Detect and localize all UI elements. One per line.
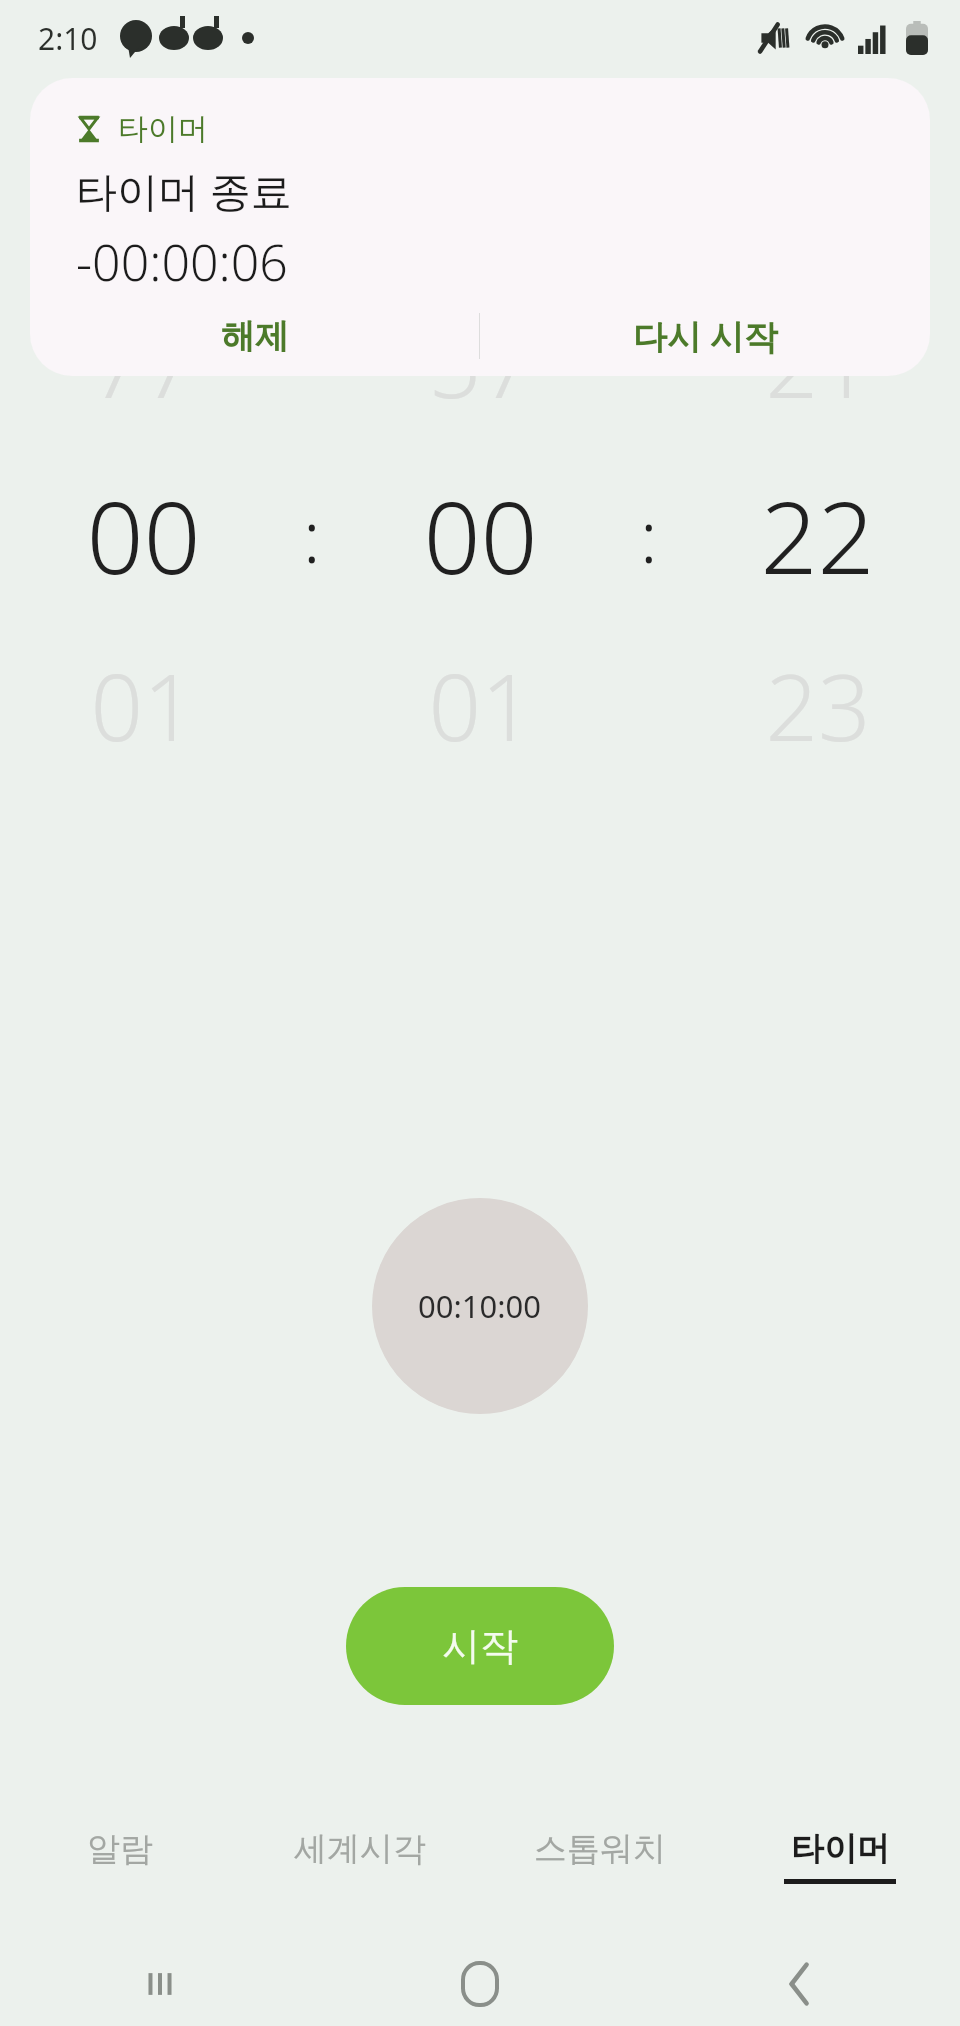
button[interactable]: Back [640, 1942, 960, 2026]
staticText: 세계시각 [294, 1828, 426, 1870]
button[interactable]: 타이머 [30, 78, 930, 376]
staticText: : [640, 486, 658, 584]
staticText: 21 [765, 300, 871, 425]
staticText: 시작 [442, 1622, 518, 1670]
staticText: 타이머 [118, 110, 208, 148]
staticText: : [303, 486, 321, 584]
staticText: 타이머 종료 [76, 162, 292, 218]
staticText: 22 [760, 467, 875, 603]
button[interactable]: 알람 [0, 1820, 240, 1930]
button[interactable]: 해제 [30, 296, 479, 376]
button[interactable]: 세계시각 [240, 1820, 480, 1930]
staticText: -00:00:06 [76, 228, 288, 296]
staticText: 해제 [221, 315, 289, 358]
staticText: 다시 시작 [633, 313, 778, 359]
button[interactable]: Home [320, 1942, 640, 2026]
staticText: 00 [423, 467, 538, 603]
staticText: 00 [86, 467, 201, 603]
staticText: 01 [90, 643, 196, 768]
staticText: 알람 [87, 1828, 153, 1870]
button[interactable]: 00:10:00 [372, 1198, 588, 1414]
staticText: 23 [765, 643, 871, 768]
staticText: 00:10:00 [418, 1285, 542, 1327]
button[interactable]: 시작 [346, 1587, 614, 1705]
staticText: 2:10 [38, 18, 98, 59]
staticText: 타이머 [791, 1828, 890, 1870]
staticText: 01 [428, 643, 534, 768]
staticText: 57 [428, 300, 534, 425]
button[interactable]: 타이머 [720, 1820, 960, 1930]
staticText: 스톱워치 [534, 1828, 666, 1870]
staticText: 77 [90, 300, 196, 425]
button[interactable]: Recent apps [0, 1942, 320, 2026]
button[interactable]: 다시 시작 [480, 296, 930, 376]
button[interactable]: 스톱워치 [480, 1820, 720, 1930]
